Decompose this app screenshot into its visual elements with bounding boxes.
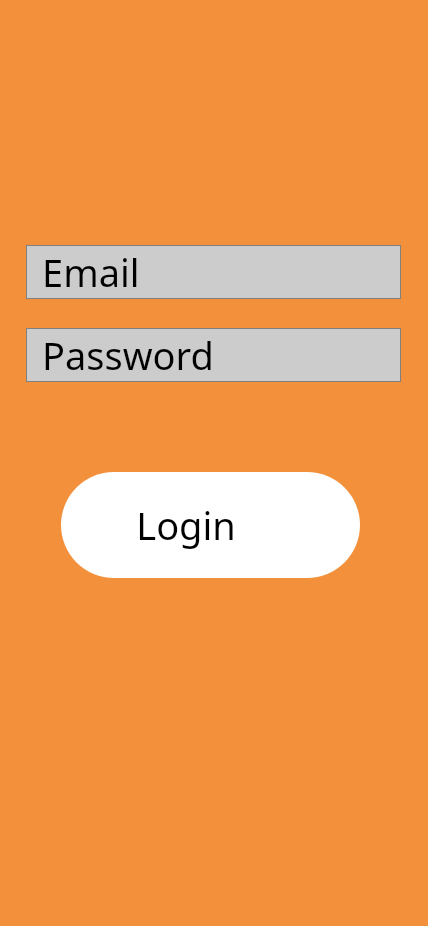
- staticText: Login: [136, 499, 236, 551]
- staticText: Email: [42, 246, 140, 298]
- button[interactable]: Email: [26, 245, 401, 299]
- button[interactable]: Password: [26, 328, 401, 382]
- button[interactable]: Login: [61, 472, 360, 578]
- staticText: Password: [42, 329, 214, 381]
